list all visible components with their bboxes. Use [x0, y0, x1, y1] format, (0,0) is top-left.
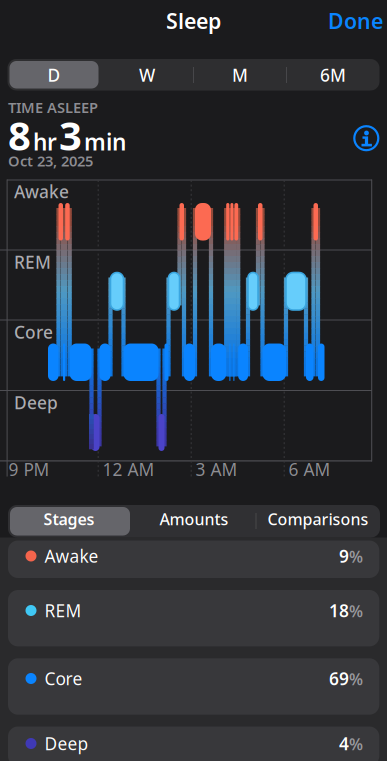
- staticText: 6M: [320, 63, 346, 86]
- button[interactable]: Amounts: [132, 503, 256, 535]
- staticText: TIME ASLEEP: [8, 97, 98, 117]
- staticText: %: [349, 546, 363, 567]
- staticText: M: [232, 63, 248, 86]
- staticText: Done: [328, 6, 383, 35]
- button[interactable]: Stages: [7, 503, 131, 535]
- button[interactable]: 6M: [286, 59, 379, 90]
- staticText: Comparisons: [267, 508, 368, 530]
- staticText: Sleep: [166, 6, 221, 35]
- button[interactable]: [353, 125, 379, 151]
- staticText: Core: [44, 667, 82, 690]
- button[interactable]: W: [100, 59, 193, 90]
- staticText: Awake: [44, 544, 98, 567]
- staticText: %: [349, 668, 363, 690]
- staticText: 18: [329, 599, 349, 622]
- button[interactable]: M: [193, 59, 286, 90]
- staticText: 6 AM: [288, 458, 330, 481]
- staticText: 3: [59, 108, 82, 162]
- staticText: W: [139, 63, 155, 86]
- staticText: Awake: [14, 180, 69, 203]
- staticText: 9: [339, 544, 349, 567]
- staticText: 4: [339, 732, 349, 755]
- staticText: hr: [33, 127, 57, 157]
- staticText: Stages: [43, 508, 94, 530]
- staticText: REM: [44, 599, 81, 622]
- staticText: %: [349, 600, 363, 622]
- staticText: %: [349, 733, 363, 755]
- button[interactable]: Comparisons: [256, 503, 380, 535]
- staticText: Deep: [44, 732, 88, 755]
- staticText: 9 PM: [8, 458, 49, 481]
- staticText: Oct 23, 2025: [8, 151, 93, 170]
- staticText: D: [47, 63, 60, 86]
- staticText: min: [84, 127, 126, 157]
- staticText: 69: [329, 667, 349, 690]
- staticText: Core: [14, 320, 53, 343]
- staticText: Deep: [14, 391, 58, 414]
- staticText: 12 AM: [102, 458, 154, 481]
- staticText: REM: [14, 250, 51, 273]
- staticText: 3 AM: [195, 458, 237, 481]
- staticText: Amounts: [159, 508, 228, 530]
- staticText: 8: [8, 108, 31, 162]
- button[interactable]: D: [7, 59, 100, 90]
- button[interactable]: Done: [328, 6, 383, 35]
